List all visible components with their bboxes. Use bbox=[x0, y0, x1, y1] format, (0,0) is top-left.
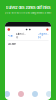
staticText: Plan bbox=[7, 34, 13, 37]
staticText: Suivez des zones définies bbox=[5, 5, 50, 10]
staticText: Légende bbox=[37, 32, 48, 39]
staticText: pour être notifié des changements à veni… bbox=[4, 11, 51, 14]
staticText: Satellite bbox=[15, 32, 25, 39]
staticText: Ma zone bbox=[7, 43, 15, 45]
